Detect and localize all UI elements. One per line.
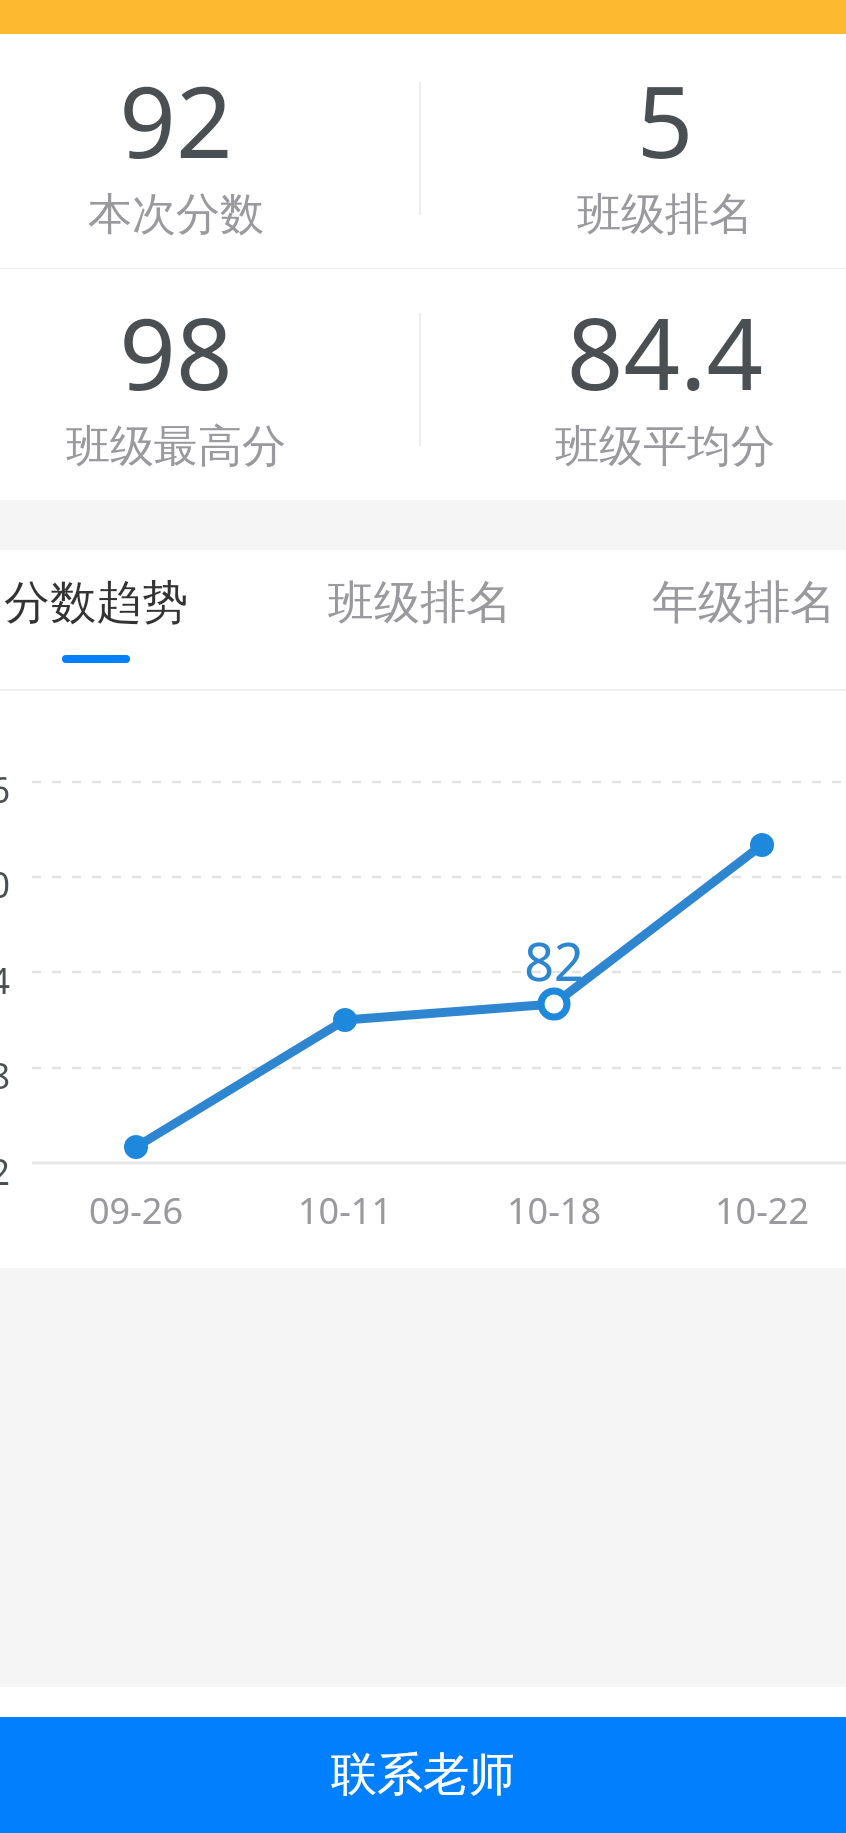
staticText: 年级排名 [652, 574, 836, 632]
staticText: 09-26 [36, 1186, 236, 1235]
button[interactable]: 分数趋势 [0, 550, 258, 689]
staticText: 84.4 [465, 284, 846, 419]
button[interactable]: 5 [465, 52, 846, 242]
staticText: 班级排名 [465, 187, 846, 242]
button[interactable]: 84.4 [465, 284, 846, 474]
staticText: 本次分数 [0, 187, 376, 242]
staticText: 10-22 [662, 1186, 846, 1235]
staticText: 班级平均分 [465, 419, 846, 474]
staticText: 班级排名 [328, 574, 512, 632]
staticText: 90 [0, 860, 10, 909]
staticText: 96 [0, 765, 10, 814]
button[interactable]: 年级排名 [582, 550, 846, 689]
button[interactable]: 92 [0, 52, 376, 242]
staticText: 班级最高分 [0, 419, 376, 474]
staticText: 10-11 [245, 1186, 445, 1235]
staticText: 82 [494, 925, 614, 996]
staticText: 10-18 [454, 1186, 654, 1235]
button[interactable]: 98 [0, 284, 376, 474]
staticText: 78 [0, 1051, 10, 1100]
button[interactable]: 联系老师 [0, 1717, 846, 1833]
staticText: 92 [0, 52, 376, 187]
staticText: 联系老师 [331, 1746, 515, 1804]
staticText: 72 [0, 1147, 10, 1196]
staticText: 84 [0, 956, 10, 1005]
button[interactable]: 班级排名 [258, 550, 582, 689]
staticText: 98 [0, 284, 376, 419]
staticText: 5 [465, 52, 846, 187]
staticText: 分数趋势 [4, 574, 188, 632]
